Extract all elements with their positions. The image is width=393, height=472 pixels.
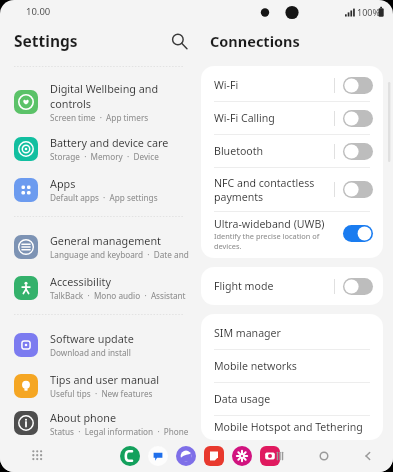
button[interactable]: Internet — [176, 446, 196, 466]
staticText: NFC and contactless — [214, 176, 315, 190]
button[interactable]: Bluetooth — [201, 135, 383, 167]
staticText: Battery and device care — [50, 135, 169, 150]
button[interactable]: Data usage — [201, 383, 383, 415]
staticText: Connections — [210, 31, 300, 51]
staticText: Screen time · App timers — [50, 112, 149, 123]
button[interactable]: Phone — [120, 446, 140, 466]
button[interactable]: Flight mode — [201, 270, 383, 302]
button[interactable]: Battery and device care — [0, 128, 196, 169]
staticText: Default apps · App settings — [50, 192, 158, 203]
staticText: Apps — [50, 176, 76, 191]
staticText: Language and keyboard · Date and time — [50, 249, 190, 260]
staticText: payments — [214, 190, 264, 204]
button[interactable]: General management — [0, 226, 196, 267]
staticText: Settings — [14, 30, 78, 51]
staticText: controls — [50, 96, 92, 111]
staticText: devices. — [214, 241, 242, 251]
button[interactable]: Toggle on — [343, 225, 373, 242]
staticText: Bluetooth — [214, 144, 264, 158]
button[interactable]: Toggle off — [343, 77, 373, 94]
staticText: 10.00 — [26, 5, 51, 18]
staticText: Useful tips · New features — [50, 388, 153, 399]
button[interactable]: Wi-Fi Calling — [201, 102, 383, 134]
staticText: Digital Wellbeing and parental — [50, 81, 190, 96]
button[interactable]: Gallery — [232, 446, 252, 466]
button[interactable]: Camera — [260, 446, 280, 466]
staticText: Wi-Fi — [214, 78, 239, 92]
staticText: Flight mode — [214, 279, 274, 293]
button[interactable]: About phone — [0, 406, 196, 440]
staticText: Tips and user manual — [50, 372, 160, 387]
staticText: Mobile networks — [214, 359, 297, 373]
staticText: Data usage — [214, 392, 271, 406]
button[interactable]: Accessibility — [0, 267, 196, 308]
button[interactable]: Software update — [0, 324, 196, 365]
button[interactable]: Wi-Fi — [201, 69, 383, 101]
button[interactable]: Search — [166, 28, 192, 54]
button[interactable]: Apps — [27, 445, 49, 467]
button[interactable]: Ultra-wideband (UWB) — [201, 212, 383, 255]
button[interactable]: Digital Wellbeing and parental — [0, 76, 196, 128]
staticText: Status · Legal information · Phone name — [50, 426, 190, 437]
staticText: SIM manager — [214, 326, 281, 340]
button[interactable]: Mobile Hotspot and Tethering — [201, 416, 383, 437]
staticText: 100% — [357, 6, 380, 18]
button[interactable]: Mobile networks — [201, 350, 383, 382]
button[interactable]: Recents — [269, 445, 291, 467]
button[interactable]: NFC and contactless — [201, 168, 383, 211]
button[interactable]: SIM manager — [201, 317, 383, 349]
staticText: Identify the precise location of nearby — [214, 231, 343, 241]
button[interactable]: Messages — [148, 446, 168, 466]
button[interactable]: Apps — [0, 169, 196, 210]
button[interactable]: Tips and user manual — [0, 365, 196, 406]
button[interactable]: Home — [313, 445, 335, 467]
staticText: Accessibility — [50, 274, 111, 289]
staticText: Mobile Hotspot and Tethering — [214, 420, 363, 434]
staticText: Software update — [50, 331, 134, 346]
button[interactable]: Toggle off — [343, 110, 373, 127]
staticText: TalkBack · Mono audio · Assistant menu — [50, 290, 190, 301]
button[interactable]: Toggle off — [343, 278, 373, 295]
staticText: General management — [50, 233, 161, 248]
staticText: Download and install — [50, 347, 131, 358]
button[interactable]: Toggle off — [343, 181, 373, 198]
staticText: Storage · Memory · Device protection — [50, 151, 190, 162]
button[interactable]: Toggle off — [343, 143, 373, 160]
staticText: About phone — [50, 410, 117, 425]
staticText: Ultra-wideband (UWB) — [214, 217, 325, 231]
button[interactable]: Back — [357, 445, 379, 467]
button[interactable]: Notes — [204, 446, 224, 466]
staticText: Wi-Fi Calling — [214, 111, 275, 125]
